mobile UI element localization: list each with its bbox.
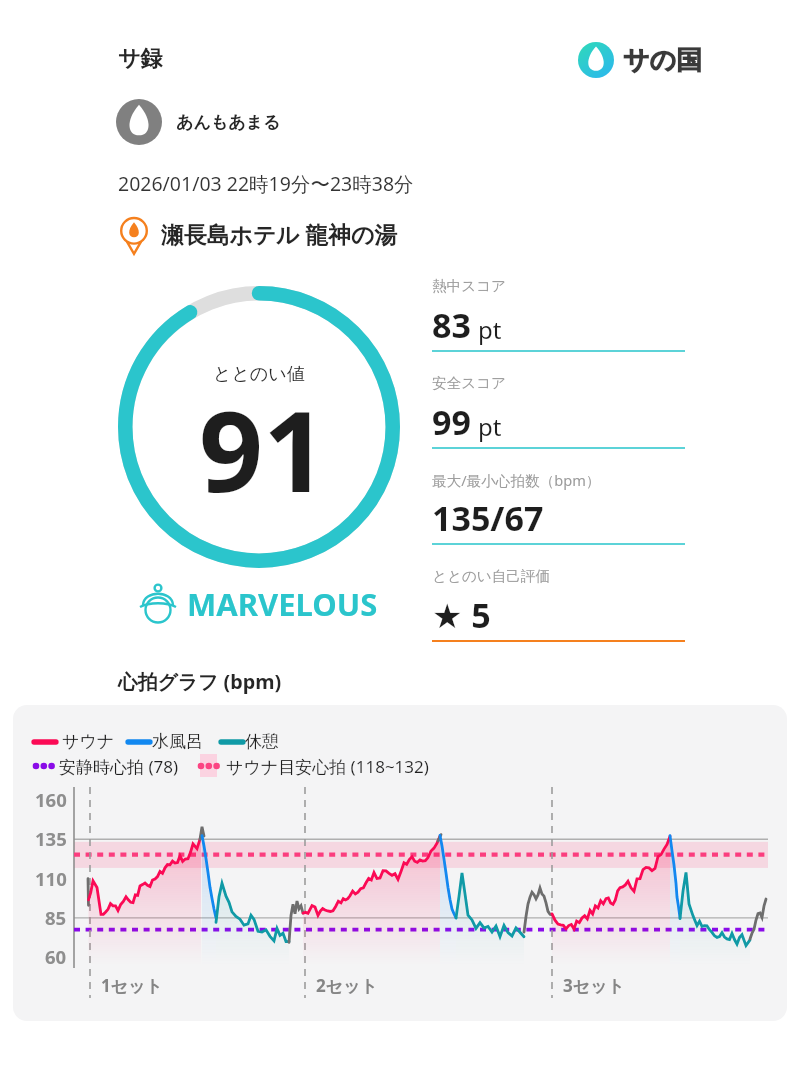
button[interactable]: 最大/最小心拍数（bpm） xyxy=(432,470,685,516)
staticText: ととのい値 xyxy=(213,363,305,386)
staticText: 2026/01/03 22時19分〜23時38分 xyxy=(118,170,414,197)
staticText: 安静時心拍 (78) xyxy=(59,755,179,778)
staticText: 60 xyxy=(45,944,67,969)
staticText: 110 xyxy=(35,866,67,891)
staticText: 91 xyxy=(199,372,328,525)
staticText: サの国 xyxy=(623,44,703,77)
staticText: 休憩 xyxy=(245,731,279,752)
staticText: 85 xyxy=(45,905,67,930)
staticText: 1セット xyxy=(101,974,163,997)
staticText: 水風呂 xyxy=(152,731,203,752)
staticText: あんもあまる xyxy=(176,112,281,133)
staticText: 160 xyxy=(35,787,67,812)
button[interactable]: あんもあまる xyxy=(116,99,281,145)
staticText: サウナ xyxy=(62,731,115,752)
staticText: MARVELOUS xyxy=(187,583,378,625)
staticText: 熱中スコア xyxy=(432,277,506,295)
staticText: pt xyxy=(478,313,502,346)
button[interactable]: サウナ目安心拍 (118~132) xyxy=(200,755,403,778)
staticText: 心拍グラフ (bpm) xyxy=(118,668,282,695)
button[interactable]: MARVELOUS xyxy=(134,580,378,628)
staticText: 83 xyxy=(432,302,471,348)
button[interactable]: ととのい自己評価 xyxy=(432,567,685,613)
staticText: 安全スコア xyxy=(432,374,506,392)
staticText: ととのい自己評価 xyxy=(432,567,551,585)
button[interactable]: 水風呂 xyxy=(125,731,176,752)
staticText: ★ 5 xyxy=(432,592,491,638)
button[interactable]: サの国 ホーム xyxy=(578,42,703,78)
staticText: 135 xyxy=(35,826,67,851)
button[interactable]: 安静時心拍 (78) xyxy=(35,755,155,778)
staticText: 99 xyxy=(432,399,471,445)
button[interactable]: 熱中スコア xyxy=(432,277,685,323)
button[interactable]: 安全スコア xyxy=(432,374,685,420)
button[interactable]: 瀬長島ホテル 龍神の湯 xyxy=(114,214,398,254)
staticText: 瀬長島ホテル 龍神の湯 xyxy=(161,219,398,250)
button[interactable]: 休憩 xyxy=(218,731,252,752)
staticText: サ録 xyxy=(118,45,163,73)
staticText: サウナ目安心拍 (118~132) xyxy=(226,755,429,778)
staticText: 135/67 xyxy=(432,495,544,541)
staticText: 3セット xyxy=(563,974,625,997)
staticText: pt xyxy=(478,410,502,443)
staticText: 2セット xyxy=(316,974,378,997)
button[interactable]: サウナ xyxy=(31,731,84,752)
staticText: 最大/最小心拍数（bpm） xyxy=(432,470,601,490)
